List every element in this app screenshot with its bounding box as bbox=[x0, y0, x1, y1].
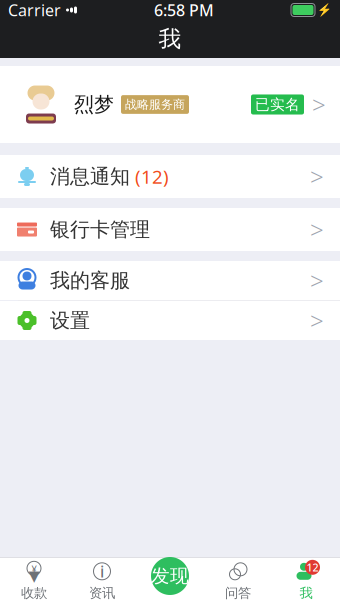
staticText: 12 bbox=[306, 560, 318, 574]
staticText: 6:58 PM bbox=[154, 0, 214, 21]
staticText: ⚡ bbox=[317, 3, 332, 17]
button[interactable]: 银行卡管理 bbox=[0, 208, 340, 251]
staticText: 银行卡管理 bbox=[50, 217, 150, 242]
staticText: > bbox=[310, 214, 324, 245]
button[interactable]: ▼ bbox=[0, 558, 68, 604]
staticText: Carrier bbox=[8, 0, 61, 21]
staticText: 收款 bbox=[21, 585, 47, 601]
staticText: 发现 bbox=[151, 564, 189, 587]
button[interactable]: 12 bbox=[272, 558, 340, 604]
staticText: > bbox=[310, 265, 324, 296]
staticText: 烈梦 bbox=[74, 92, 114, 117]
staticText: ¥ bbox=[31, 563, 36, 575]
button[interactable]: 我的客服 bbox=[0, 261, 340, 300]
staticText: 战略服务商 bbox=[125, 97, 185, 112]
staticText: 我 bbox=[299, 585, 312, 601]
staticText: > bbox=[310, 161, 324, 192]
staticText: > bbox=[312, 89, 326, 120]
staticText: > bbox=[310, 305, 324, 336]
button[interactable]: 消息通知 bbox=[0, 155, 340, 198]
staticText: 问答 bbox=[225, 585, 251, 601]
staticText: ▼ bbox=[28, 567, 39, 584]
staticText: 消息通知 bbox=[50, 164, 130, 189]
button[interactable]: 问答 bbox=[204, 558, 272, 604]
button[interactable]: 设置 bbox=[0, 301, 340, 340]
staticText: (12) bbox=[135, 164, 169, 189]
staticText: 我 bbox=[158, 25, 181, 53]
staticText: 设置 bbox=[50, 308, 90, 333]
staticText: i bbox=[100, 561, 104, 582]
staticText: 我的客服 bbox=[50, 268, 130, 293]
staticText: 已实名 bbox=[255, 95, 300, 113]
button[interactable]: 发现 bbox=[151, 557, 189, 595]
button[interactable]: 烈梦 bbox=[0, 66, 340, 143]
staticText: 资讯 bbox=[89, 585, 115, 601]
button[interactable]: i bbox=[68, 558, 136, 604]
